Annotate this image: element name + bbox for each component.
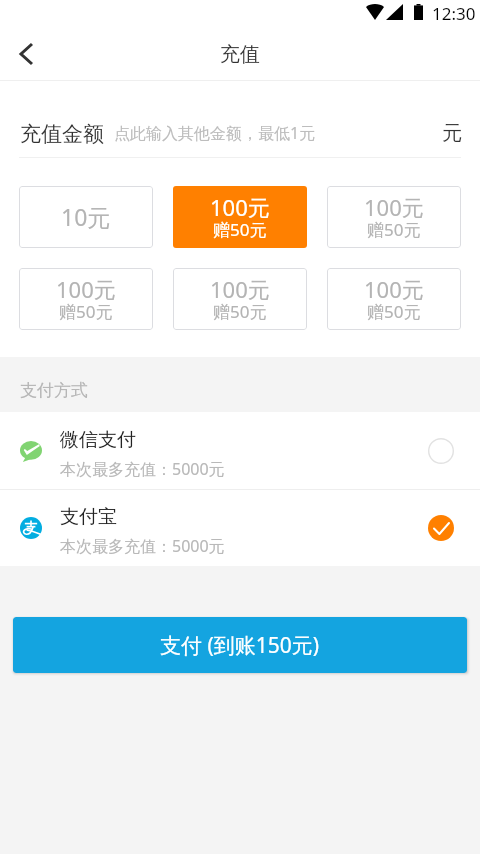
staticText: 10元 [61,201,111,232]
staticText: 充值金额 [20,121,104,147]
staticText: 赠50元 [367,300,421,323]
staticText: 支付宝 [60,505,117,529]
staticText: 赠50元 [367,218,421,241]
button[interactable]: Back [3,31,49,77]
staticText: 本次最多充值：5000元 [60,535,225,557]
button[interactable]: 充值金额 [0,81,480,158]
staticText: 100元 [364,192,424,222]
staticText: 赠50元 [213,218,267,241]
button[interactable]: 支付宝 [0,490,480,566]
button[interactable]: 10元 [19,186,153,248]
button[interactable]: 微信支付 [0,412,480,489]
staticText: 赠50元 [213,300,267,323]
staticText: 100元 [210,192,270,222]
staticText: 点此输入其他金额，最低1元 [114,122,316,144]
staticText: 微信支付 [60,428,136,452]
button[interactable]: 支付 (到账150元) [13,617,467,673]
staticText: 100元 [56,274,116,304]
button[interactable]: 100元 [173,186,307,248]
staticText: 赠50元 [59,300,113,323]
staticText: 充值 [220,42,260,67]
button[interactable]: 100元 [327,186,461,248]
staticText: 本次最多充值：5000元 [60,458,225,480]
button[interactable]: 100元 [173,268,307,330]
staticText: 元 [442,121,462,146]
staticText: 100元 [364,274,424,304]
button[interactable]: 100元 [327,268,461,330]
staticText: 100元 [210,274,270,304]
button[interactable]: 100元 [19,268,153,330]
staticText: 12:30 [432,2,476,25]
staticText: 支付方式 [20,380,88,401]
staticText: 支付 (到账150元) [160,631,320,660]
